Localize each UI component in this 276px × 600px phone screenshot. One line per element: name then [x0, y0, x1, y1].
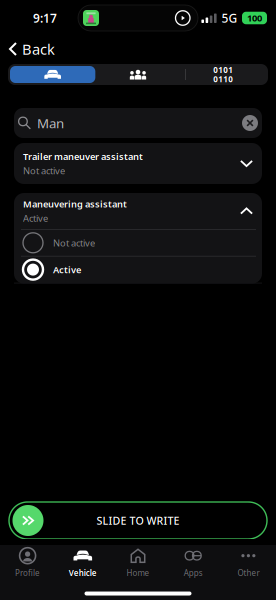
button[interactable]: Diagnostics	[181, 66, 266, 83]
staticText: Active	[53, 263, 81, 276]
staticText: 9:17	[33, 10, 57, 26]
button[interactable]: Trailer maneuver assistant	[14, 143, 262, 184]
button[interactable]: Other	[221, 541, 276, 583]
button[interactable]: Maneuvering assistant	[14, 193, 262, 229]
staticText: SLIDE TO WRITE	[96, 513, 179, 528]
button[interactable]: Back	[0, 36, 276, 62]
staticText: Man	[37, 114, 64, 132]
staticText: Vehicle	[69, 568, 97, 578]
button[interactable]: Vehicle	[55, 541, 110, 583]
button[interactable]: Home	[110, 541, 166, 583]
staticText: 0101	[213, 65, 233, 75]
staticText: Profile	[15, 568, 40, 578]
button[interactable]: Occupants	[95, 66, 181, 83]
staticText: 100	[247, 12, 262, 24]
staticText: Maneuvering assistant	[23, 198, 127, 210]
button[interactable]: Vehicle	[10, 66, 95, 83]
staticText: Active	[23, 212, 48, 224]
button[interactable]: Not active	[14, 230, 262, 256]
staticText: Apps	[184, 568, 203, 578]
staticText: Not active	[53, 237, 95, 249]
staticText: Trailer maneuver assistant	[23, 150, 143, 162]
staticText: Other	[237, 568, 259, 578]
button[interactable]: Apps	[166, 541, 221, 583]
staticText: Not active	[23, 164, 65, 177]
staticText: 5G	[221, 10, 237, 26]
staticText: 0110	[213, 74, 233, 84]
button[interactable]: SLIDE TO WRITE	[9, 502, 267, 539]
button[interactable]: Profile	[0, 541, 55, 583]
staticText: Home	[126, 568, 149, 578]
button[interactable]: Clear search	[242, 115, 258, 131]
staticText: Back	[22, 39, 55, 59]
button[interactable]: Active	[14, 257, 262, 283]
